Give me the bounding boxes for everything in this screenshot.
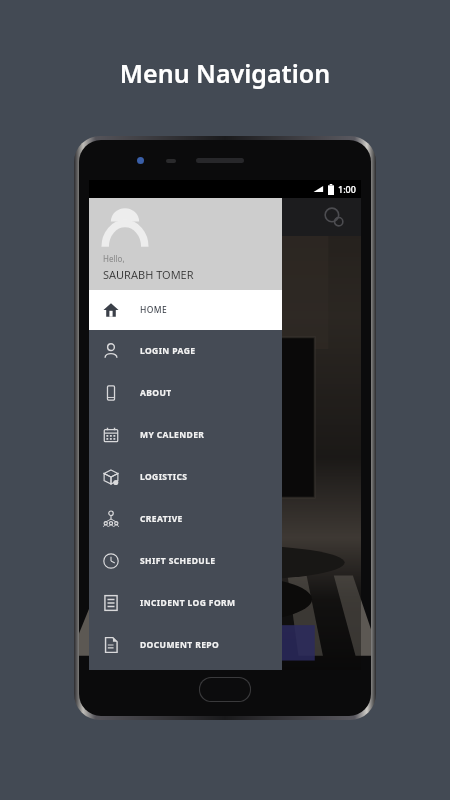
staticText: DOCUMENT REPO xyxy=(140,639,220,651)
button[interactable]: LOGIN PAGE xyxy=(89,330,282,372)
staticText: SAURABH TOMER xyxy=(103,267,194,282)
staticText: MY CALENDER xyxy=(140,429,205,441)
button[interactable]: INCIDENT LOG FORM xyxy=(89,582,282,624)
button[interactable]: DOCUMENT REPO xyxy=(89,624,282,666)
button[interactable]: Home xyxy=(200,678,250,701)
staticText: INCIDENT LOG FORM xyxy=(140,597,236,609)
button[interactable]: ABOUT xyxy=(89,372,282,414)
staticText: Hello, xyxy=(103,253,125,264)
staticText: ABOUT xyxy=(140,387,172,399)
button[interactable]: CREATIVE xyxy=(89,498,282,540)
button[interactable]: LOGISTICS xyxy=(89,456,282,498)
button[interactable]: MY CALENDER xyxy=(89,414,282,456)
button[interactable]: SHIFT SCHEDULE xyxy=(89,540,282,582)
staticText: Menu Navigation xyxy=(0,56,450,90)
button[interactable]: App logo xyxy=(321,204,347,230)
staticText: LOGISTICS xyxy=(140,471,188,483)
staticText: CREATIVE xyxy=(140,513,183,525)
button[interactable]: HOME xyxy=(89,290,282,330)
staticText: 1:00 xyxy=(338,183,356,195)
staticText: LOGIN PAGE xyxy=(140,345,196,357)
staticText: HOME xyxy=(140,304,168,316)
staticText: SHIFT SCHEDULE xyxy=(140,555,216,567)
